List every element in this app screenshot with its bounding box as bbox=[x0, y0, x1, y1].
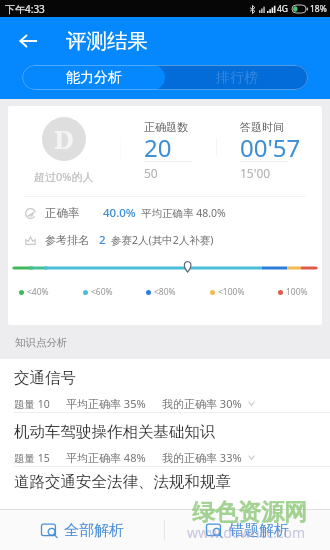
button[interactable]: 能力分析 bbox=[22, 65, 165, 90]
staticText: 题量 10 bbox=[14, 397, 50, 411]
staticText: 答题时间 bbox=[240, 120, 284, 134]
staticText: 交通信号 bbox=[14, 368, 76, 388]
staticText: 15'00 bbox=[240, 165, 271, 181]
staticText: <100% bbox=[218, 286, 245, 298]
button[interactable]: 交通信号 bbox=[0, 359, 330, 412]
staticText: 知识点分析 bbox=[15, 336, 68, 349]
staticText: 2 bbox=[99, 232, 106, 248]
staticText: 正确题数 bbox=[144, 120, 188, 134]
staticText: www.downcc.com bbox=[187, 523, 306, 542]
button[interactable]: 错题解析 bbox=[165, 510, 330, 550]
staticText: 00'57 bbox=[240, 131, 301, 157]
staticText: 4G bbox=[277, 3, 289, 15]
button[interactable]: 道路交通安全法律、法规和规章 bbox=[0, 467, 330, 497]
staticText: 错题解析 bbox=[229, 521, 289, 540]
staticText: 绿色资源网 bbox=[192, 498, 307, 527]
staticText: 平均正确率 48% bbox=[66, 450, 146, 465]
staticText: D bbox=[54, 121, 74, 156]
staticText: <40% bbox=[27, 286, 49, 298]
staticText: 100% bbox=[286, 286, 308, 298]
staticText: 下午4:33 bbox=[5, 2, 45, 16]
button[interactable]: 机动车驾驶操作相关基础知识 bbox=[0, 413, 330, 466]
staticText: 评测结果 bbox=[66, 28, 148, 54]
staticText: 20 bbox=[144, 131, 172, 157]
staticText: 18% bbox=[310, 3, 327, 15]
staticText: 参考排名 bbox=[45, 233, 89, 247]
staticText: 全部解析 bbox=[64, 521, 124, 540]
staticText: 排行榜 bbox=[216, 69, 258, 87]
staticText: 机动车驾驶操作相关基础知识 bbox=[14, 422, 216, 442]
staticText: 我的正确率 30% bbox=[162, 396, 242, 411]
staticText: 我的正确率 33% bbox=[162, 450, 242, 465]
staticText: 正确率 bbox=[45, 206, 80, 220]
staticText: 能力分析 bbox=[66, 69, 122, 87]
staticText: 道路交通安全法律、法规和规章 bbox=[14, 472, 231, 492]
staticText: 平均正确率 35% bbox=[66, 396, 146, 411]
staticText: 50 bbox=[144, 165, 158, 181]
button[interactable]: 排行榜 bbox=[165, 65, 308, 90]
staticText: 平均正确率 48.0% bbox=[141, 206, 226, 220]
staticText: 参赛2人(其中2人补赛) bbox=[111, 233, 214, 247]
staticText: 40.0% bbox=[103, 205, 136, 221]
staticText: <60% bbox=[91, 286, 113, 298]
staticText: 题量 15 bbox=[14, 451, 50, 465]
button[interactable]: 全部解析 bbox=[0, 510, 164, 550]
staticText: <80% bbox=[154, 286, 176, 298]
button[interactable]: Back bbox=[17, 30, 39, 52]
staticText: 超过0%的人 bbox=[34, 169, 94, 184]
